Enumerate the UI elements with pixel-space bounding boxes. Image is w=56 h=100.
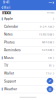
- staticText: Sunday: [42, 48, 52, 52]
- staticText: ▪▪▪ ▮: [48, 1, 53, 4]
- button[interactable]: Weather: [0, 85, 56, 93]
- staticText: Filters: [47, 11, 54, 14]
- staticText: Notes: [4, 33, 13, 36]
- button[interactable]: Notes: [0, 31, 56, 39]
- staticText: Monday: [42, 41, 52, 44]
- button[interactable]: Calendar: [0, 23, 56, 31]
- staticText: Sat: [48, 56, 52, 59]
- staticText: Mail: [4, 6, 11, 9]
- button[interactable]: Compose: [47, 78, 53, 84]
- staticText: Calendar: [4, 25, 18, 28]
- button[interactable]: Messages: [47, 86, 53, 92]
- button[interactable]: Filters: [47, 11, 56, 14]
- staticText: 9:41: [3, 1, 9, 4]
- staticText: Apple: [4, 17, 13, 21]
- button[interactable]: Wallet: [0, 70, 56, 78]
- button[interactable]: Mail: [0, 5, 11, 10]
- staticText: TV: [4, 64, 8, 67]
- staticText: Wed: [46, 80, 52, 83]
- staticText: Tue: [46, 87, 52, 91]
- staticText: Weather: [4, 87, 17, 91]
- staticText: Thu: [46, 72, 52, 75]
- staticText: Support: [4, 79, 16, 83]
- button[interactable]: Apple: [0, 15, 56, 23]
- button[interactable]: TV: [0, 62, 56, 70]
- staticText: Reminders: [4, 48, 21, 52]
- staticText: Wallet: [4, 72, 14, 75]
- button[interactable]: Support: [0, 78, 56, 85]
- button[interactable]: Music: [0, 54, 56, 62]
- staticText: Yesterday: [39, 33, 52, 36]
- staticText: ✐: [48, 79, 51, 83]
- staticText: 9:24 AM: [40, 25, 52, 28]
- staticText: Inbox: [2, 10, 11, 15]
- staticText: Music: [4, 56, 14, 60]
- button[interactable]: Reminders: [0, 46, 56, 54]
- staticText: Fri: [49, 64, 52, 67]
- staticText: Photos: [4, 40, 15, 44]
- staticText: ▤: [48, 87, 51, 91]
- button[interactable]: Photos: [0, 39, 56, 46]
